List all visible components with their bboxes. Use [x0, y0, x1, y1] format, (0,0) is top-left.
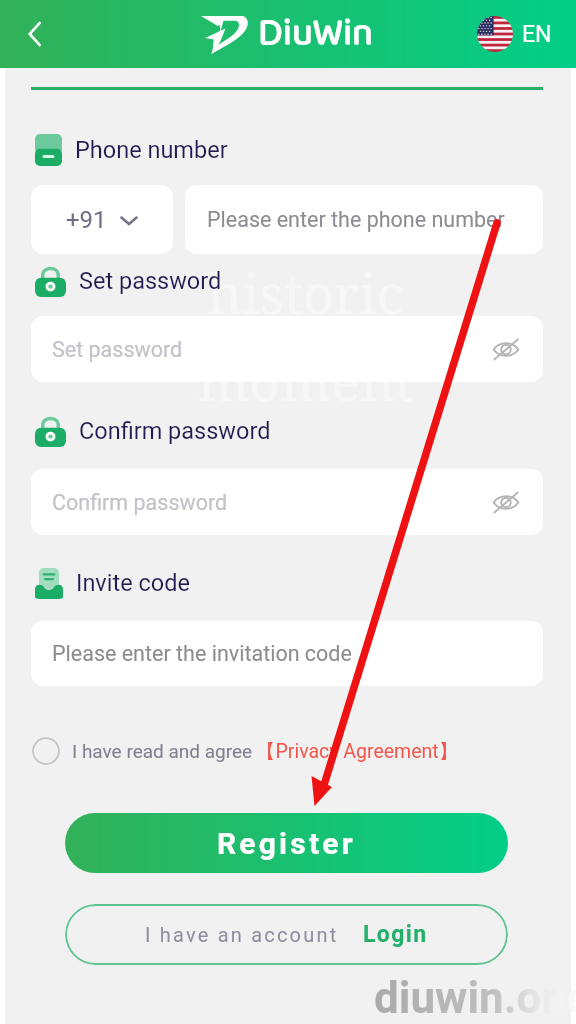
staticText: Login	[363, 921, 428, 948]
button[interactable]: I have an account	[65, 904, 508, 965]
button[interactable]: Back	[12, 12, 56, 56]
staticText: Confirm password	[52, 490, 228, 515]
staticText: moment	[198, 343, 414, 417]
button[interactable]: Show password	[489, 485, 523, 519]
staticText: Phone number	[75, 136, 228, 164]
staticText: Confirm password	[79, 417, 271, 445]
staticText: +91	[66, 206, 107, 234]
button[interactable]: Show password	[489, 332, 523, 366]
staticText: diuwin.one	[374, 972, 576, 1024]
button[interactable]: EN	[477, 16, 552, 52]
staticText: I have an account	[145, 923, 339, 946]
button[interactable]: I have read and agree	[32, 735, 459, 767]
staticText: historic	[208, 256, 404, 330]
staticText: Invite code	[76, 569, 190, 597]
staticText: Please enter the invitation code	[52, 641, 352, 666]
staticText: Please enter the phone number	[207, 207, 505, 232]
staticText: I have read and agree	[72, 740, 253, 762]
button[interactable]: +91	[31, 185, 173, 254]
button[interactable]: Please enter the invitation code	[31, 621, 543, 686]
staticText: Set password	[79, 267, 222, 295]
button[interactable]: Set password	[31, 316, 543, 382]
button[interactable]: Register	[65, 813, 508, 873]
staticText: Set password	[52, 337, 183, 362]
staticText: Register	[217, 826, 356, 861]
staticText: 【Privacy Agreement】	[256, 739, 459, 764]
button[interactable]: Confirm password	[31, 469, 543, 535]
button[interactable]: Please enter the phone number	[185, 185, 543, 254]
staticText: DiuWin	[258, 3, 373, 64]
staticText: EN	[522, 21, 552, 48]
